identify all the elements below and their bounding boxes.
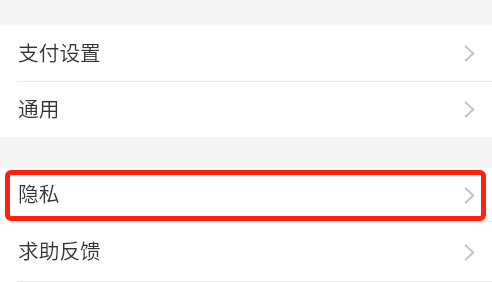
staticText: 通用 (18, 93, 60, 123)
other: Open 隐私 (465, 188, 474, 203)
button[interactable]: 支付设置 (0, 25, 492, 82)
button[interactable]: 通用 (0, 82, 492, 137)
other: Open 支付设置 (465, 46, 474, 61)
other: Open 求助反馈 (465, 245, 474, 260)
staticText: 支付设置 (18, 37, 101, 67)
staticText: 求助反馈 (18, 235, 101, 265)
button[interactable]: 求助反馈 (0, 222, 492, 282)
button[interactable]: 隐私 (0, 168, 492, 222)
other: Open 通用 (465, 102, 474, 117)
staticText: 隐私 (18, 178, 60, 208)
